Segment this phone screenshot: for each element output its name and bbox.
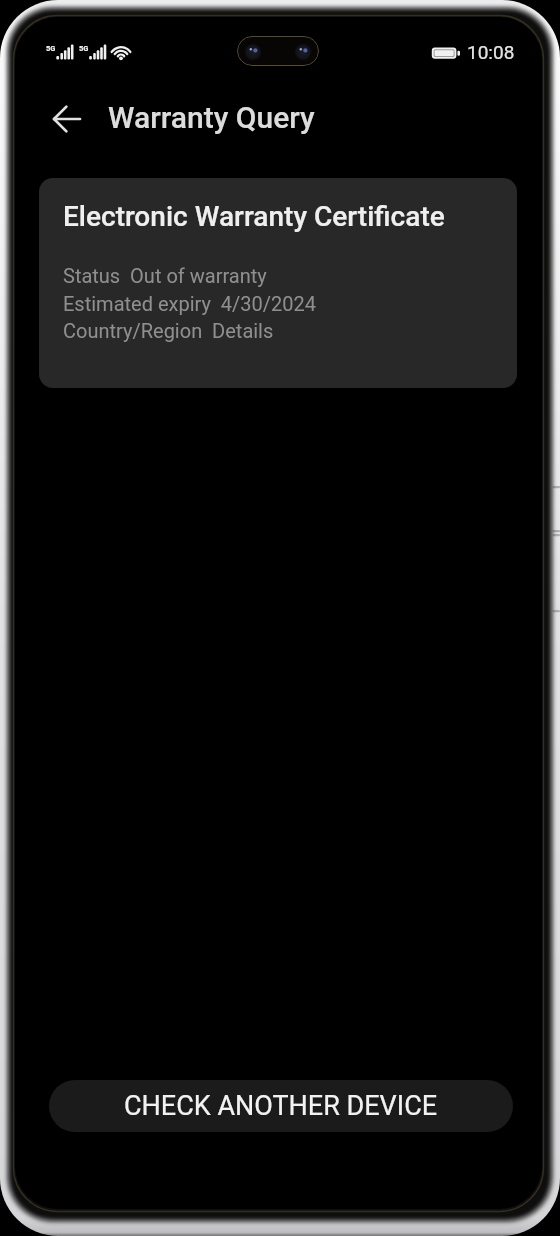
button[interactable]: Electronic Warranty Certificate <box>39 178 517 388</box>
staticText: Status Out of warranty <box>63 264 267 287</box>
staticText: 5G <box>79 44 89 53</box>
button[interactable] <box>45 99 89 139</box>
staticText: 5G <box>46 44 56 53</box>
staticText: Electronic Warranty Certificate <box>63 200 445 233</box>
staticText: CHECK ANOTHER DEVICE <box>124 1090 438 1122</box>
button[interactable]: CHECK ANOTHER DEVICE <box>49 1080 513 1132</box>
staticText: Country/Region Details <box>63 319 274 342</box>
staticText: Warranty Query <box>108 100 315 135</box>
staticText: 10:08 <box>467 41 515 63</box>
staticText: Estimated expiry 4/30/2024 <box>63 292 317 315</box>
